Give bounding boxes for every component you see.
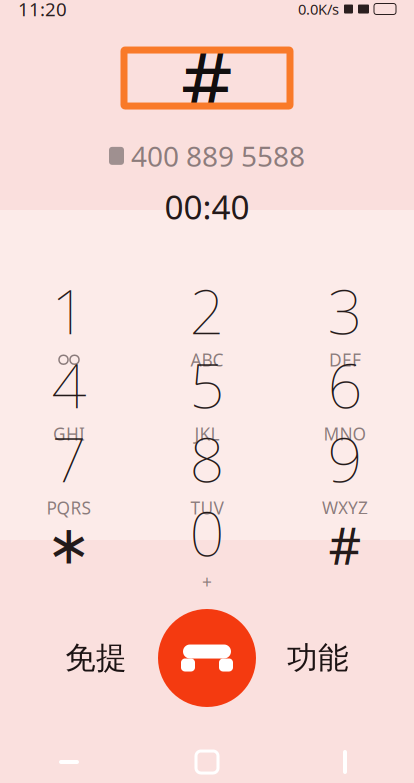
button[interactable]: Star — [0, 505, 138, 579]
staticText: + — [202, 570, 212, 593]
button[interactable]: 1 — [0, 283, 138, 357]
staticText: 1 — [51, 270, 86, 351]
button[interactable]: 7 — [0, 431, 138, 505]
staticText: ∗ — [46, 515, 91, 575]
button[interactable]: 0 — [138, 505, 276, 579]
staticText: 11:20 — [18, 0, 67, 21]
staticText: WXYZ — [322, 496, 368, 519]
button[interactable]: Recents — [276, 747, 414, 777]
staticText: 8 — [189, 418, 224, 499]
staticText: GHI — [53, 422, 85, 445]
button[interactable]: 4 — [0, 357, 138, 431]
staticText: 400 889 5588 — [131, 137, 305, 174]
button[interactable]: 免提 — [34, 619, 158, 697]
staticText: 0 — [189, 492, 224, 573]
button[interactable]: 6 — [276, 357, 414, 431]
staticText: # — [181, 25, 233, 131]
staticText: PQRS — [46, 496, 91, 519]
staticText: 7 — [51, 418, 86, 499]
button[interactable]: Home — [138, 747, 276, 777]
button[interactable]: 2 — [138, 283, 276, 357]
button[interactable]: End call — [158, 609, 256, 707]
staticText: 6 — [327, 344, 362, 425]
staticText: JKL — [194, 422, 219, 445]
button[interactable]: Back — [0, 747, 138, 777]
button[interactable]: 功能 — [256, 619, 380, 697]
staticText: TUV — [190, 496, 223, 519]
staticText: # — [328, 511, 361, 579]
button[interactable]: 3 — [276, 283, 414, 357]
staticText: 00:40 — [164, 184, 249, 229]
button[interactable]: 9 — [276, 431, 414, 505]
staticText: 3 — [327, 270, 362, 351]
button[interactable]: 8 — [138, 431, 276, 505]
staticText: 2 — [189, 270, 224, 351]
staticText: ABC — [190, 348, 223, 371]
staticText: DEF — [329, 348, 361, 371]
staticText: 9 — [327, 418, 362, 499]
button[interactable]: Pound — [276, 505, 414, 579]
staticText: 0.0K/s — [298, 0, 339, 19]
staticText: 4 — [51, 344, 86, 425]
button[interactable]: 5 — [138, 357, 276, 431]
staticText: 功能 — [287, 639, 349, 677]
staticText: 5 — [189, 344, 224, 425]
staticText: 免提 — [65, 639, 127, 677]
staticText: MNO — [323, 422, 366, 445]
